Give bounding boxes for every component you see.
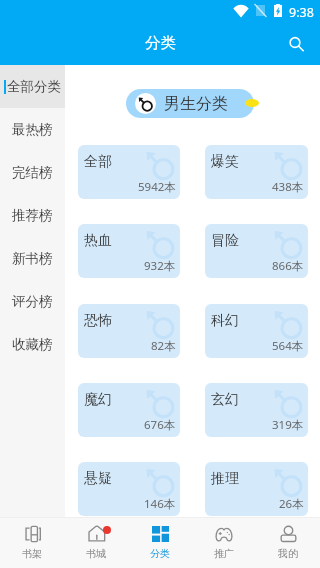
staticText: 5942本 (138, 179, 176, 195)
staticText: 书城 (86, 547, 106, 560)
staticText: 推荐榜 (12, 207, 53, 224)
button[interactable]: 我的 (256, 518, 320, 568)
staticText: 评分榜 (12, 293, 53, 310)
staticText: 完结榜 (12, 164, 53, 181)
staticText: 分类 (150, 547, 170, 560)
staticText: 676本 (144, 417, 176, 433)
staticText: 男生分类 (164, 94, 228, 114)
staticText: 科幻 (211, 312, 239, 330)
button[interactable]: 全部分类 (0, 65, 65, 108)
button[interactable]: 男生分类 (126, 89, 254, 118)
staticText: 866本 (272, 258, 304, 274)
staticText: 魔幻 (84, 391, 112, 409)
staticText: 悬疑 (84, 470, 112, 488)
staticText: 推广 (214, 547, 234, 560)
staticText: 319本 (272, 417, 304, 433)
button[interactable]: Search (278, 26, 312, 60)
staticText: 冒险 (211, 232, 239, 250)
staticText: 收藏榜 (12, 336, 53, 353)
button[interactable]: 冒险 (205, 224, 308, 278)
staticText: 热血 (84, 232, 112, 250)
button[interactable]: 完结榜 (0, 151, 65, 194)
button[interactable]: 评分榜 (0, 280, 65, 323)
button[interactable]: 推理 (205, 462, 308, 516)
staticText: 新书榜 (12, 250, 53, 267)
button[interactable]: 恐怖 (78, 304, 180, 358)
staticText: 我的 (278, 547, 298, 560)
button[interactable]: 爆笑 (205, 145, 308, 199)
button[interactable]: 分类 (128, 518, 192, 568)
button[interactable]: 热血 (78, 224, 180, 278)
staticText: 146本 (144, 496, 176, 512)
staticText: 全部分类 (7, 78, 61, 95)
button[interactable]: 魔幻 (78, 383, 180, 437)
staticText: 26本 (279, 496, 304, 512)
staticText: 9:38 (289, 4, 314, 21)
button[interactable]: 玄幻 (205, 383, 308, 437)
staticText: 全部 (84, 153, 112, 171)
staticText: 恐怖 (84, 312, 112, 330)
button[interactable]: 书架 (0, 518, 64, 568)
button[interactable]: 全部 (78, 145, 180, 199)
button[interactable]: 最热榜 (0, 108, 65, 151)
staticText: 玄幻 (211, 391, 239, 409)
staticText: 438本 (272, 179, 304, 195)
button[interactable]: 书城 (64, 518, 128, 568)
button[interactable]: 悬疑 (78, 462, 180, 516)
button[interactable]: 科幻 (205, 304, 308, 358)
staticText: 564本 (272, 338, 304, 354)
staticText: 932本 (144, 258, 176, 274)
button[interactable]: 推广 (192, 518, 256, 568)
button[interactable]: 收藏榜 (0, 323, 65, 366)
staticText: 爆笑 (211, 153, 239, 171)
staticText: 书架 (22, 547, 42, 560)
staticText: 最热榜 (12, 121, 53, 138)
staticText: 分类 (145, 33, 176, 53)
staticText: 推理 (211, 470, 239, 488)
button[interactable]: 新书榜 (0, 237, 65, 280)
staticText: 82本 (151, 338, 176, 354)
button[interactable]: 推荐榜 (0, 194, 65, 237)
